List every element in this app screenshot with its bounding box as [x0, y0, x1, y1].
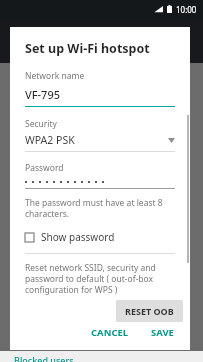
staticText: VF-795 [25, 87, 60, 102]
staticText: WPA2 PSK [25, 133, 75, 147]
staticText: Password [25, 162, 64, 174]
staticText: Show password [41, 230, 115, 244]
staticText: The password must have at least 8 charac… [25, 197, 163, 219]
staticText: Reset network SSID, security and passwor… [25, 262, 156, 295]
button[interactable]: CANCEL [84, 322, 136, 342]
staticText: CANCEL [91, 326, 129, 338]
staticText: Blocked users [14, 354, 74, 362]
staticText: 10:00 [176, 4, 197, 15]
staticText: Set up Wi-Fi hotspot [25, 40, 150, 57]
staticText: SAVE [151, 326, 174, 338]
button[interactable]: Show password [10, 230, 190, 244]
button[interactable]: SAVE [144, 322, 181, 342]
staticText: RESET OOB [125, 305, 174, 317]
button[interactable]: Network name [10, 70, 190, 107]
button[interactable]: RESET OOB [116, 300, 183, 322]
button[interactable]: Password [10, 162, 190, 189]
staticText: Security [25, 118, 57, 130]
button[interactable]: Security [10, 118, 190, 152]
staticText: Network name [25, 70, 85, 82]
